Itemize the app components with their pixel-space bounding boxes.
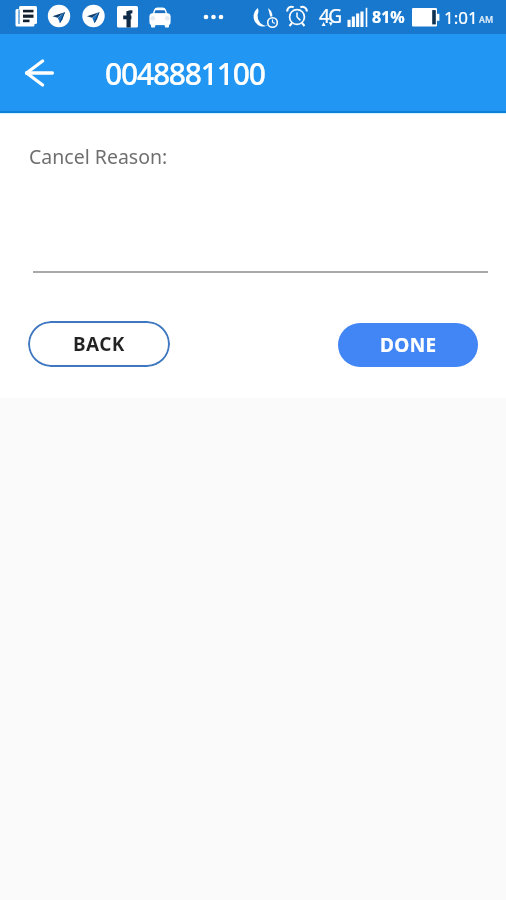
- button[interactable]: Back: [12, 45, 68, 101]
- button[interactable]: DONE: [338, 323, 478, 367]
- staticText: Cancel Reason:: [29, 143, 168, 170]
- staticText: 0048881100: [105, 53, 265, 94]
- staticText: 1:01: [444, 6, 478, 29]
- button[interactable]: BACK: [28, 321, 170, 367]
- staticText: AM: [479, 13, 494, 25]
- staticText: BACK: [73, 331, 125, 357]
- staticText: 4G: [319, 3, 341, 29]
- staticText: DONE: [380, 332, 437, 358]
- staticText: 81%: [372, 6, 405, 28]
